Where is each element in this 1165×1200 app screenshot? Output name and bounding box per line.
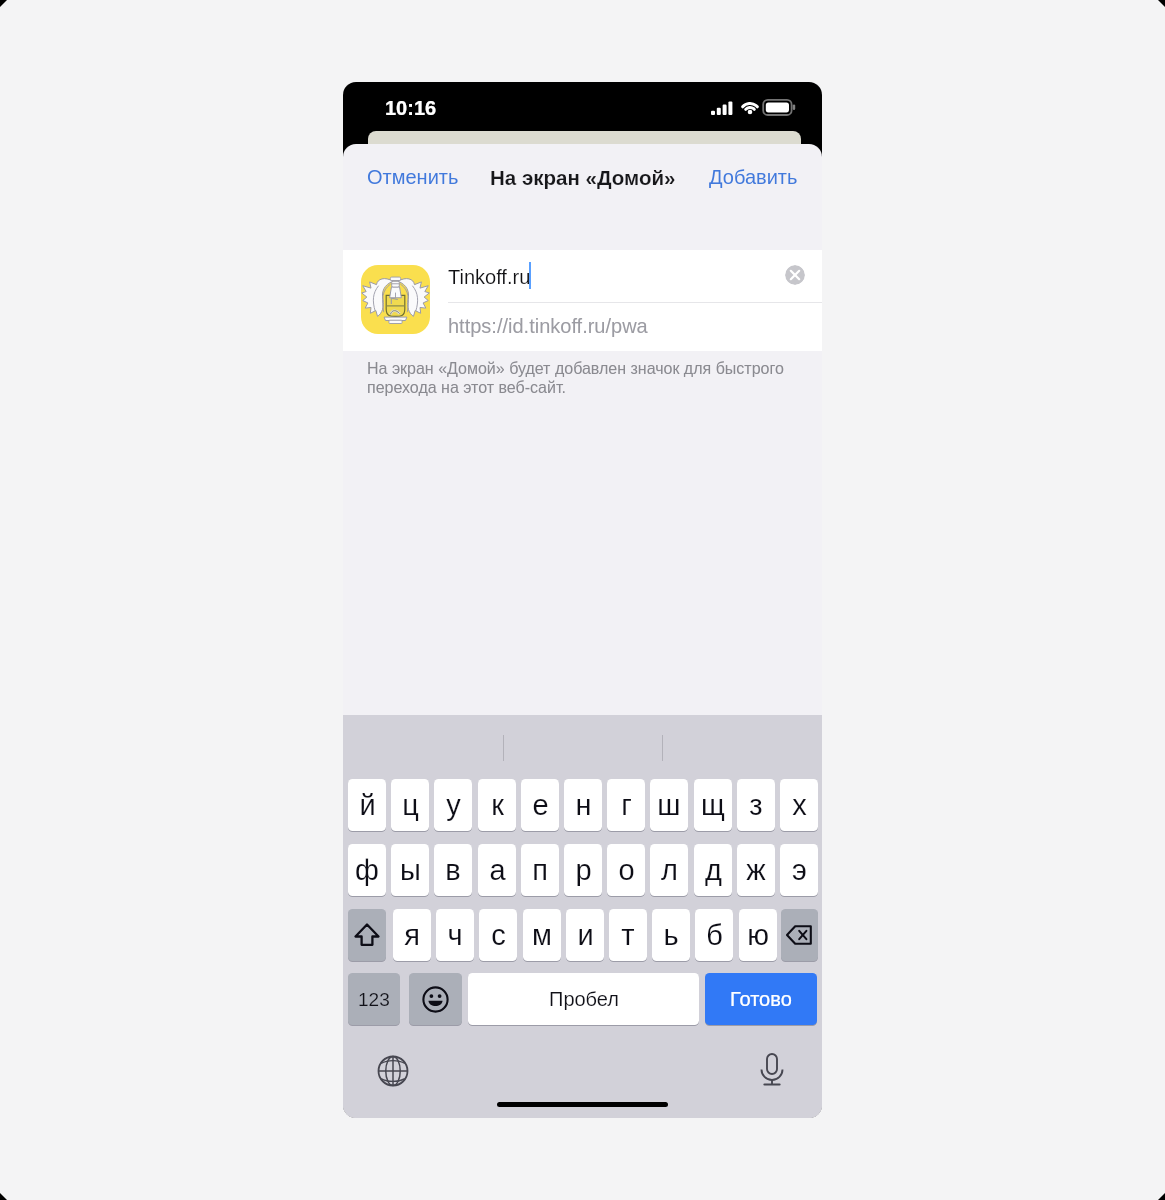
button[interactable]: Tinkoff.ru	[448, 250, 822, 302]
button[interactable]: з	[737, 779, 775, 831]
staticText: у	[446, 789, 461, 821]
button[interactable]: Добавить	[696, 156, 811, 198]
staticText: ю	[747, 919, 769, 951]
staticText: в	[445, 854, 461, 886]
button[interactable]: м	[523, 909, 561, 961]
staticText: На экран «Домой»	[490, 166, 676, 189]
staticText: ж	[746, 854, 766, 886]
staticText: с	[491, 919, 506, 951]
staticText: ш	[657, 789, 681, 821]
button[interactable]: ж	[737, 844, 775, 896]
staticText: щ	[701, 789, 725, 821]
staticText: х	[792, 789, 807, 821]
button[interactable]: т	[609, 909, 647, 961]
staticText: м	[532, 919, 552, 951]
button[interactable]: р	[564, 844, 602, 896]
staticText: а	[489, 854, 506, 886]
button[interactable]: ю	[739, 909, 777, 961]
button[interactable]: г	[607, 779, 645, 831]
button[interactable]: Диктовка	[753, 1050, 791, 1088]
staticText: й	[359, 789, 376, 821]
staticText: ч	[447, 919, 463, 951]
button[interactable]: э	[780, 844, 818, 896]
button[interactable]: ш	[650, 779, 688, 831]
staticText: ь	[663, 919, 679, 951]
staticText: р	[575, 854, 592, 886]
button[interactable]: щ	[694, 779, 732, 831]
staticText: Пробел	[549, 988, 619, 1010]
button[interactable]: ф	[348, 844, 386, 896]
button[interactable]: н	[564, 779, 602, 831]
staticText: л	[661, 854, 678, 886]
staticText: https://id.tinkoff.ru/pwa	[448, 315, 648, 337]
button[interactable]: п	[521, 844, 559, 896]
staticText: Отменить	[367, 166, 459, 188]
button[interactable]: о	[607, 844, 645, 896]
button[interactable]: Backspace	[781, 909, 818, 961]
staticText: ы	[400, 854, 421, 886]
button[interactable]: у	[434, 779, 472, 831]
staticText: На экран «Домой» будет добавлен значок д…	[367, 360, 784, 397]
button[interactable]: Готово	[705, 973, 817, 1025]
button[interactable]: ы	[391, 844, 429, 896]
staticText: г	[621, 789, 632, 821]
staticText: н	[575, 789, 592, 821]
staticText: э	[792, 854, 807, 886]
button[interactable]: Shift	[348, 909, 386, 961]
button[interactable]: й	[348, 779, 386, 831]
staticText: б	[706, 919, 723, 951]
button[interactable]: 123	[348, 973, 400, 1025]
staticText: я	[404, 919, 420, 951]
button[interactable]: ь	[652, 909, 690, 961]
staticText: 10:16	[385, 97, 437, 119]
staticText: Готово	[730, 988, 792, 1010]
button[interactable]: ц	[391, 779, 429, 831]
button[interactable]: Сменить язык	[375, 1053, 411, 1089]
button[interactable]: Отменить	[354, 156, 472, 198]
staticText: з	[749, 789, 763, 821]
staticText: Tinkoff.ru	[448, 266, 531, 288]
button[interactable]: д	[694, 844, 732, 896]
button[interactable]: с	[479, 909, 517, 961]
staticText: Добавить	[709, 166, 798, 188]
button[interactable]: и	[566, 909, 604, 961]
button[interactable]: е	[521, 779, 559, 831]
staticText: 123	[358, 989, 390, 1010]
staticText: д	[705, 854, 722, 886]
button[interactable]: https://id.tinkoff.ru/pwa	[448, 303, 822, 351]
button[interactable]: я	[393, 909, 431, 961]
button[interactable]: в	[434, 844, 472, 896]
button[interactable]: б	[695, 909, 733, 961]
staticText: е	[532, 789, 549, 821]
staticText: п	[532, 854, 548, 886]
staticText: к	[491, 789, 504, 821]
button[interactable]: ч	[436, 909, 474, 961]
button[interactable]: а	[478, 844, 516, 896]
button[interactable]: л	[650, 844, 688, 896]
button[interactable]: Пробел	[468, 973, 699, 1025]
button[interactable]: к	[478, 779, 516, 831]
staticText: т	[621, 919, 635, 951]
button[interactable]: Эмодзи	[409, 973, 462, 1025]
button[interactable]: х	[780, 779, 818, 831]
staticText: о	[618, 854, 635, 886]
staticText: ц	[402, 789, 419, 821]
staticText: ф	[355, 854, 379, 886]
staticText: и	[577, 919, 594, 951]
button[interactable]: Очистить	[785, 265, 805, 285]
